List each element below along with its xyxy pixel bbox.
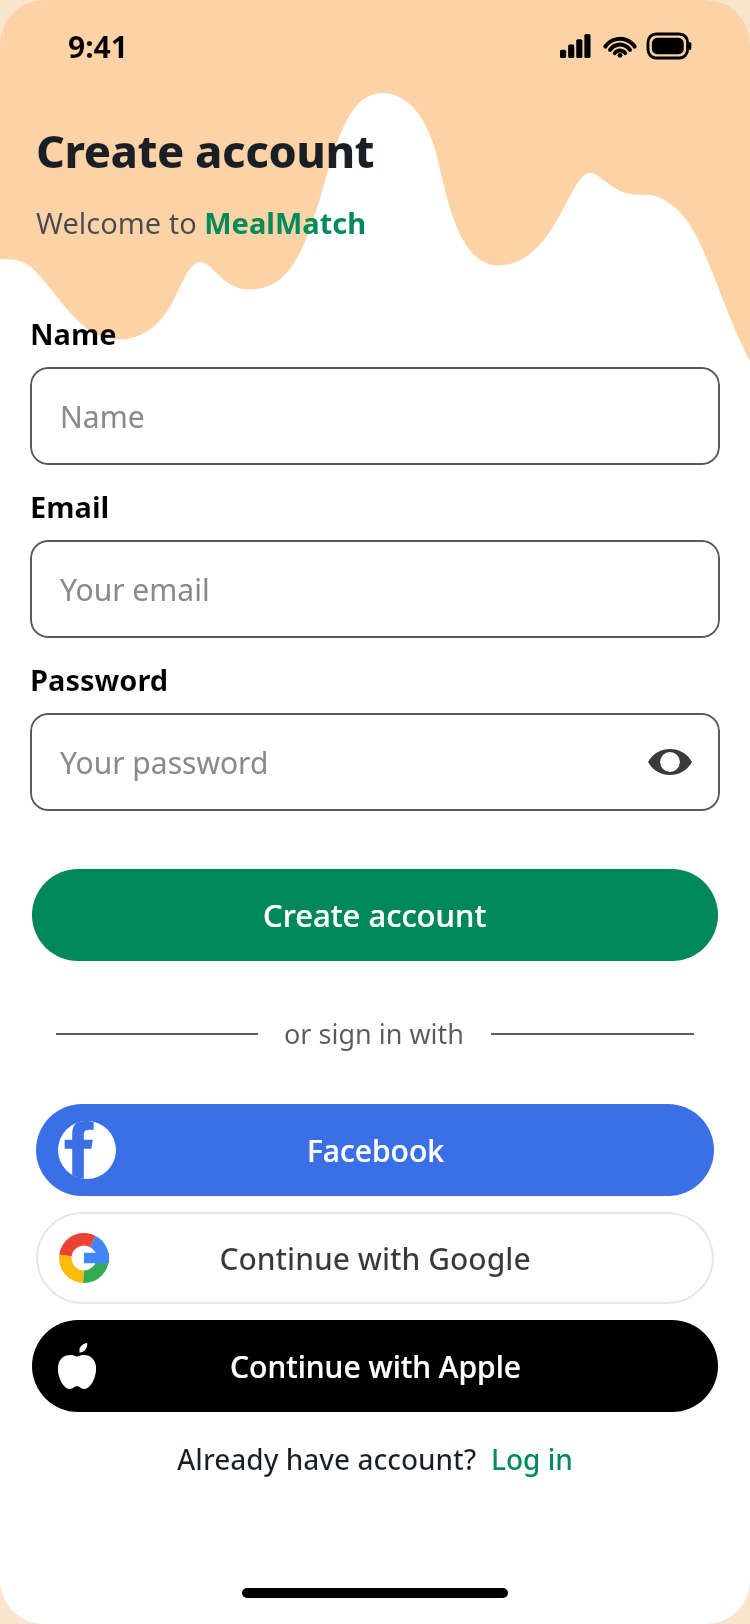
staticText: Log in <box>491 1440 573 1478</box>
staticText: Continue with Apple <box>230 1346 521 1387</box>
staticText: Welcome to MealMatch <box>36 203 367 242</box>
button[interactable]: Your email <box>30 540 720 638</box>
button[interactable]: Continue with Google <box>36 1212 714 1304</box>
staticText: Email <box>30 487 110 526</box>
button[interactable]: Continue with Apple <box>32 1320 718 1412</box>
staticText: Continue with Google <box>219 1238 531 1279</box>
staticText: Already have account? <box>177 1440 477 1478</box>
button[interactable]: Name <box>30 367 720 465</box>
button[interactable]: Facebook <box>36 1104 714 1196</box>
staticText: Create account <box>36 120 375 181</box>
staticText: Password <box>30 660 169 699</box>
button[interactable]: Show password <box>642 734 698 790</box>
button[interactable]: Your password <box>30 713 720 811</box>
staticText: Your password <box>60 742 269 783</box>
staticText: 9:41 <box>68 26 128 67</box>
staticText: Create account <box>263 894 487 936</box>
staticText: Name <box>30 314 117 353</box>
button[interactable]: Create account <box>32 869 718 961</box>
staticText: Facebook <box>307 1130 444 1171</box>
staticText: Your email <box>60 569 210 610</box>
staticText: or sign in with <box>284 1015 465 1052</box>
button[interactable]: Log in <box>491 1440 573 1478</box>
staticText: Name <box>60 396 145 437</box>
